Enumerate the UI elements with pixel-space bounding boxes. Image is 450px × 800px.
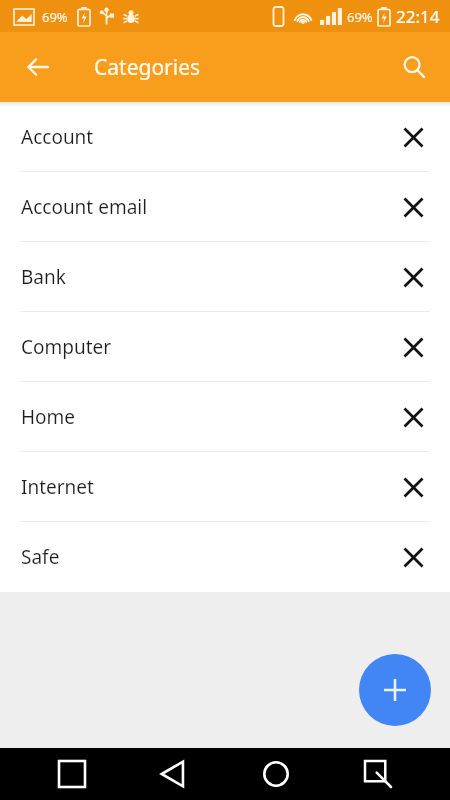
button[interactable]: Home xyxy=(254,752,298,796)
staticText: Internet xyxy=(21,474,94,500)
button[interactable]: Back xyxy=(14,43,62,91)
button[interactable]: Account xyxy=(0,102,450,171)
button[interactable]: Delete Computer xyxy=(394,328,432,366)
button[interactable]: Delete Bank xyxy=(394,258,432,296)
button[interactable]: Delete Account email xyxy=(394,188,432,226)
staticText: 69% xyxy=(42,8,68,26)
staticText: Safe xyxy=(21,544,60,570)
button[interactable]: Back xyxy=(152,752,196,796)
staticText: Computer xyxy=(21,334,112,360)
button[interactable]: Search xyxy=(390,43,438,91)
staticText: Home xyxy=(21,404,76,430)
staticText: Account email xyxy=(21,194,148,220)
button[interactable]: Delete Internet xyxy=(394,468,432,506)
button[interactable]: Delete Home xyxy=(394,398,432,436)
button[interactable]: Safe xyxy=(0,522,450,591)
staticText: Account xyxy=(21,124,94,150)
button[interactable]: Bank xyxy=(0,242,450,311)
button[interactable]: Delete Safe xyxy=(394,538,432,576)
staticText: Categories xyxy=(94,53,201,82)
button[interactable]: Home xyxy=(0,382,450,451)
button[interactable]: Recents xyxy=(50,752,94,796)
staticText: 22:14 xyxy=(396,5,440,28)
button[interactable]: Computer xyxy=(0,312,450,381)
button[interactable]: Add category xyxy=(359,654,431,726)
staticText: 69% xyxy=(347,8,373,26)
button[interactable]: Account email xyxy=(0,172,450,241)
staticText: Bank xyxy=(21,264,66,290)
button[interactable]: Screenshot xyxy=(356,752,400,796)
button[interactable]: Delete Account xyxy=(394,118,432,156)
button[interactable]: Internet xyxy=(0,452,450,521)
